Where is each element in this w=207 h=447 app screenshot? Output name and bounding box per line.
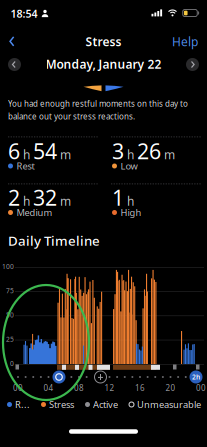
staticText: 18:54 bbox=[10, 6, 37, 21]
staticText: 20 bbox=[165, 383, 175, 393]
staticText: 00 bbox=[196, 383, 206, 393]
button[interactable]: Help bbox=[168, 29, 202, 53]
staticText: 25 bbox=[6, 335, 14, 344]
staticText: Monday, January 22 bbox=[45, 56, 161, 72]
staticText: R... bbox=[15, 398, 30, 411]
staticText: 100 bbox=[2, 262, 14, 271]
staticText: 08 bbox=[74, 383, 84, 393]
button[interactable]: Zoom to 2 hours bbox=[189, 370, 202, 383]
staticText: 32 bbox=[33, 183, 57, 212]
staticText: m bbox=[60, 147, 71, 163]
staticText: 75 bbox=[6, 286, 14, 295]
staticText: 12 bbox=[104, 383, 114, 393]
staticText: High bbox=[120, 206, 141, 219]
staticText: m bbox=[164, 147, 175, 163]
staticText: 54 bbox=[33, 137, 57, 165]
staticText: 16 bbox=[135, 383, 145, 393]
staticText: 04 bbox=[43, 383, 53, 393]
staticText: h bbox=[127, 193, 134, 209]
staticText: 2 bbox=[8, 183, 20, 212]
button[interactable]: Previous day bbox=[8, 58, 21, 71]
staticText: Low bbox=[120, 160, 137, 172]
staticText: 2h bbox=[192, 373, 200, 381]
button[interactable]: Back bbox=[3, 30, 21, 53]
staticText: 6 bbox=[8, 137, 20, 165]
staticText: Medium bbox=[16, 206, 52, 219]
staticText: h bbox=[127, 147, 134, 163]
staticText: Help bbox=[172, 33, 198, 49]
button[interactable]: Next day bbox=[186, 58, 199, 71]
staticText: You had enough restful moments on this d… bbox=[8, 98, 188, 109]
staticText: Rest bbox=[16, 160, 34, 172]
staticText: Daily Timeline bbox=[8, 232, 100, 249]
staticText: 0 bbox=[10, 359, 14, 368]
staticText: Active bbox=[93, 398, 118, 411]
staticText: 50 bbox=[6, 311, 14, 319]
staticText: 00 bbox=[13, 383, 23, 393]
staticText: balance out your stress reactions. bbox=[8, 111, 135, 122]
staticText: Unmeasurable bbox=[137, 398, 201, 411]
staticText: 1 bbox=[112, 183, 124, 212]
staticText: Stress bbox=[49, 398, 74, 411]
button[interactable]: Activity event bbox=[94, 371, 106, 383]
staticText: 26 bbox=[137, 137, 161, 165]
button[interactable]: Sleep event bbox=[52, 370, 65, 383]
staticText: Stress bbox=[85, 33, 121, 49]
staticText: h bbox=[23, 193, 30, 209]
staticText: h bbox=[23, 147, 30, 163]
staticText: 3 bbox=[112, 137, 124, 165]
staticText: m bbox=[60, 193, 71, 209]
